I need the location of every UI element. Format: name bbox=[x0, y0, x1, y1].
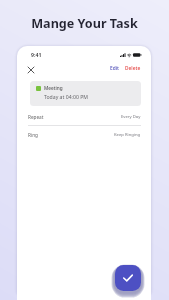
button[interactable]: Ring bbox=[28, 126, 141, 144]
button[interactable]: Confirm bbox=[115, 265, 141, 291]
staticText: Delete bbox=[125, 65, 141, 72]
button[interactable]: Repeat bbox=[28, 108, 141, 126]
staticText: Meeting bbox=[44, 85, 63, 91]
staticText: Repeat bbox=[28, 114, 44, 120]
button[interactable]: Edit bbox=[108, 63, 121, 74]
staticText: Ring bbox=[28, 132, 38, 138]
button[interactable]: Delete bbox=[123, 63, 143, 74]
staticText: Mange Your Task bbox=[0, 15, 169, 32]
staticText: Keep Ringing bbox=[114, 132, 141, 138]
staticText: Edit bbox=[110, 65, 119, 72]
staticText: Every Day bbox=[121, 114, 141, 120]
staticText: Today at 04:00 PM bbox=[44, 93, 88, 100]
staticText: 9:41 bbox=[31, 51, 42, 58]
button[interactable]: Meeting bbox=[30, 81, 141, 106]
button[interactable]: Close bbox=[25, 64, 37, 76]
